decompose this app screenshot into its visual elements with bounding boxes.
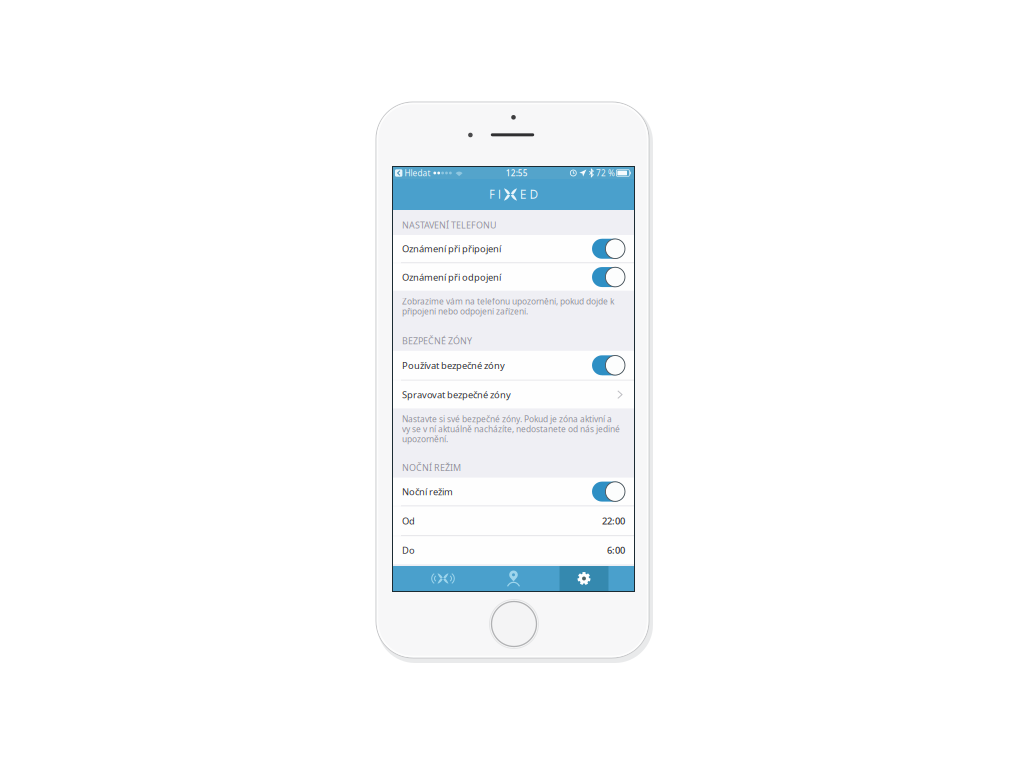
staticText: Nastavte si své bezpečné zóny. Pokud je … — [402, 413, 612, 425]
staticText: 12:55 — [506, 167, 528, 179]
staticText: 72 % — [596, 167, 615, 179]
button[interactable]: Oznámení při odpojení — [393, 263, 634, 291]
staticText: Hledat — [404, 167, 430, 179]
button[interactable]: Používat bezpečné zóny — [393, 351, 634, 380]
staticText: 6:00 — [607, 544, 625, 556]
staticText: NASTAVENÍ TELEFONU — [402, 219, 497, 231]
staticText: připojení nebo odpojení zařízení. — [402, 306, 528, 317]
staticText: Spravovat bezpečné zóny — [402, 388, 511, 401]
button[interactable]: Oznámení při připojení — [393, 235, 634, 262]
button[interactable]: Noční režim — [393, 478, 634, 506]
button[interactable]: Do — [393, 536, 634, 564]
staticText: E — [520, 186, 527, 203]
staticText: Od — [402, 514, 415, 527]
staticText: F — [489, 186, 495, 203]
staticText: Noční režim — [402, 485, 453, 498]
button[interactable]: Spravovat bezpečné zóny — [393, 381, 634, 409]
staticText: 22:00 — [602, 514, 625, 527]
staticText: upozornění. — [402, 433, 448, 445]
staticText: D — [530, 186, 538, 203]
button[interactable]: Nastavení — [549, 566, 619, 591]
staticText: Zobrazíme vám na telefonu upozornění, po… — [402, 296, 614, 307]
staticText: Oznámení při odpojení — [402, 271, 501, 283]
staticText: Oznámení při připojení — [402, 242, 501, 255]
staticText: BEZPEČNÉ ZÓNY — [402, 335, 472, 347]
button[interactable]: Od — [393, 506, 634, 535]
button[interactable]: Zařízení — [408, 566, 478, 591]
staticText: Používat bezpečné zóny — [402, 359, 505, 372]
button[interactable]: Mapa — [478, 566, 549, 591]
staticText: NOČNÍ REŽIM — [402, 461, 461, 474]
staticText: vy se v ní aktuálně nacházíte, nedostane… — [402, 423, 620, 435]
staticText: Do — [402, 544, 415, 556]
staticText: I — [498, 186, 501, 203]
